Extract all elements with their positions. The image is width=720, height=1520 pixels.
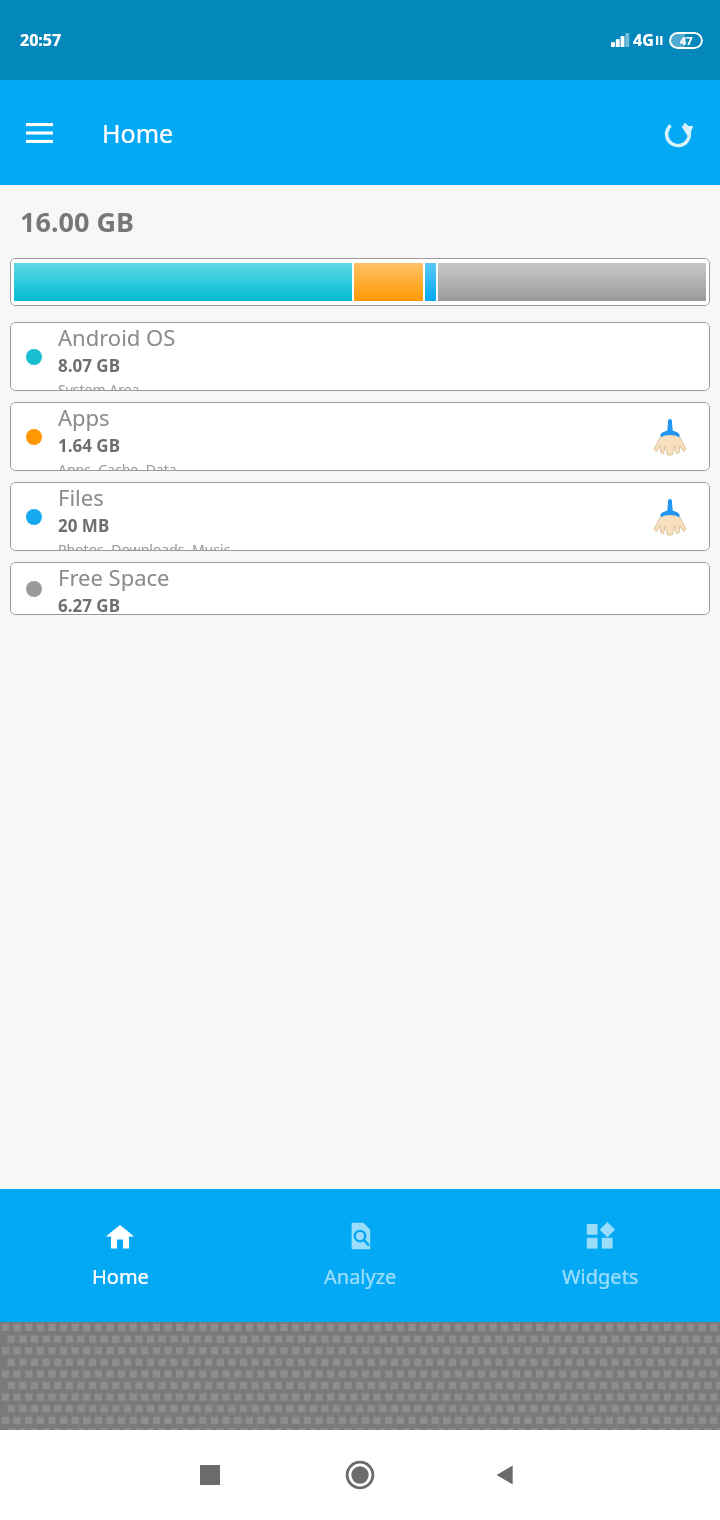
button[interactable]: Widgets [480, 1189, 720, 1322]
button[interactable]: Home [330, 1445, 390, 1505]
button[interactable] [10, 258, 710, 306]
button[interactable]: Recents [180, 1445, 240, 1505]
staticText: 1.64 GB [58, 434, 120, 457]
staticText: Apps, Cache, Data [58, 460, 177, 471]
staticText: Home [92, 1263, 149, 1290]
button[interactable]: Android OS [10, 322, 710, 391]
staticText: 8.07 GB [58, 354, 120, 377]
staticText: Widgets [562, 1263, 639, 1290]
staticText: System Area [58, 380, 140, 391]
staticText: 20:57 [20, 29, 62, 51]
staticText: 47 [680, 33, 693, 48]
button[interactable]: Files [10, 482, 710, 551]
button[interactable]: Back [475, 1445, 535, 1505]
staticText: Home [102, 116, 174, 150]
staticText: Files [58, 482, 104, 512]
button[interactable]: Refresh [652, 107, 704, 159]
staticText: 4G [633, 29, 654, 51]
button[interactable]: Apps [10, 402, 710, 471]
staticText: Android OS [58, 322, 176, 352]
button[interactable]: Clean [650, 417, 690, 457]
button[interactable]: Home [0, 1189, 240, 1322]
button[interactable]: Analyze [240, 1189, 480, 1322]
staticText: Free Space [58, 562, 170, 592]
staticText: Photos, Downloads, Music [58, 540, 231, 551]
staticText: 6.27 GB [58, 594, 120, 615]
staticText: 20 MB [58, 514, 110, 537]
staticText: 16.00 GB [20, 203, 134, 240]
button[interactable]: Clean [650, 497, 690, 537]
staticText: Analyze [324, 1263, 397, 1290]
button[interactable]: Free Space [10, 562, 710, 615]
button[interactable]: Menu [14, 108, 64, 158]
staticText: Apps [58, 402, 110, 432]
